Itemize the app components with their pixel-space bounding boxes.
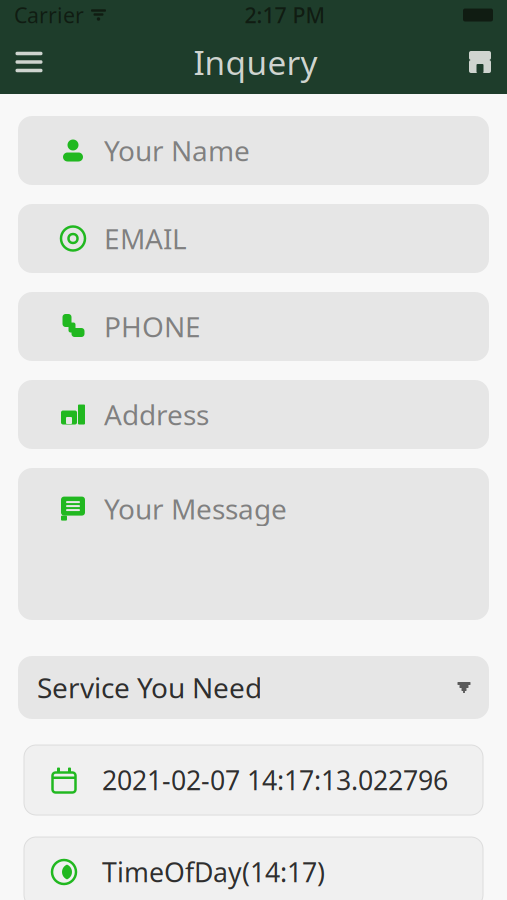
- button[interactable]: Home: [453, 36, 507, 88]
- staticText: 2021-02-07 14:17:13.022796: [102, 762, 448, 798]
- button[interactable]: EMAIL: [18, 204, 489, 273]
- button[interactable]: TimeOfDay(14:17): [24, 837, 483, 900]
- button[interactable]: PHONE: [18, 292, 489, 361]
- staticText: Inquery: [193, 40, 317, 84]
- button[interactable]: Your Name: [18, 116, 489, 185]
- staticText: PHONE: [104, 308, 201, 345]
- staticText: Your Name: [104, 132, 250, 169]
- staticText: Your Message: [104, 490, 287, 527]
- staticText: Carrier: [14, 1, 84, 29]
- button[interactable]: 2021-02-07 14:17:13.022796: [24, 745, 483, 815]
- button[interactable]: Service You Need: [18, 656, 489, 719]
- staticText: TimeOfDay(14:17): [102, 854, 325, 890]
- button[interactable]: Address: [18, 380, 489, 449]
- staticText: EMAIL: [104, 220, 187, 257]
- button[interactable]: Your Message: [18, 468, 489, 620]
- button[interactable]: Menu: [0, 35, 58, 89]
- staticText: Service You Need: [37, 669, 262, 706]
- staticText: Address: [104, 396, 209, 433]
- staticText: 2:17 PM: [244, 1, 325, 29]
